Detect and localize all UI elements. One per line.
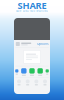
button[interactable]: Share to app <box>15 69 18 74</box>
staticText: EASY AND FAST SHARING <box>16 9 48 13</box>
button[interactable]: Action <box>26 79 30 85</box>
button[interactable]: Share to app <box>37 68 43 76</box>
button[interactable]: Action <box>43 79 47 85</box>
staticText: SHARE <box>17 0 46 12</box>
button[interactable]: Share to app <box>21 68 26 76</box>
button[interactable]: Action <box>34 79 38 85</box>
button[interactable]: Share to app <box>46 69 49 74</box>
staticText: Options <box>37 42 48 46</box>
button[interactable]: Action <box>17 79 21 85</box>
button[interactable]: Share to app <box>29 68 35 76</box>
